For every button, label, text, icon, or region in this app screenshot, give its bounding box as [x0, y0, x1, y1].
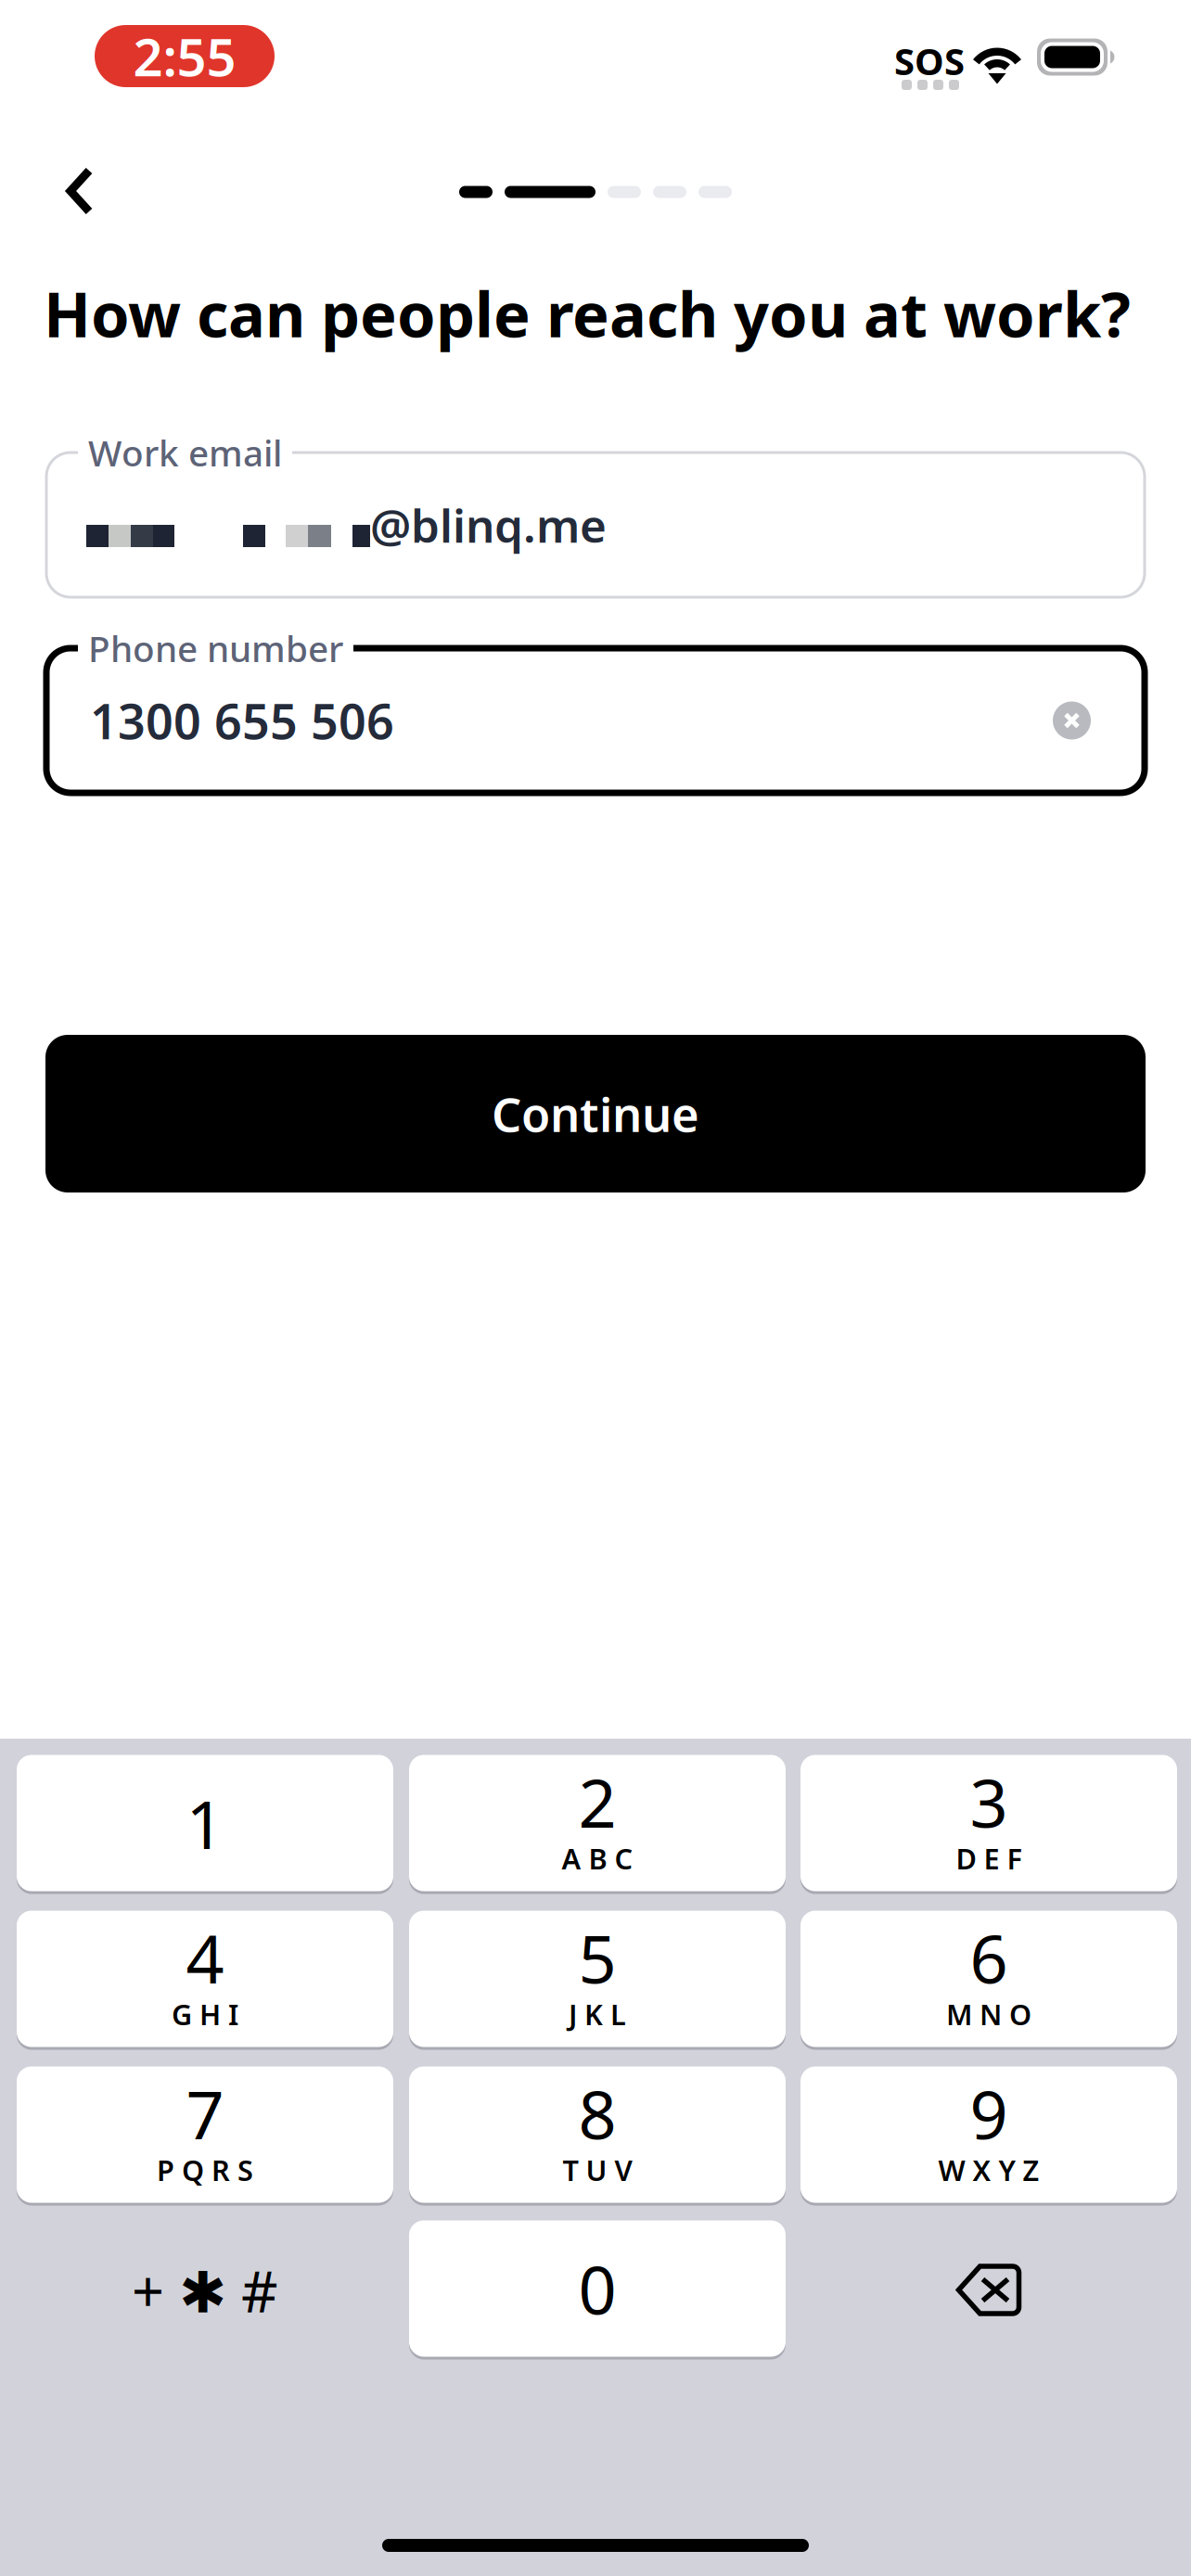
button[interactable]: 3	[800, 1755, 1177, 1894]
staticText: 1	[186, 1779, 224, 1867]
staticText: Phone number	[88, 624, 343, 672]
button[interactable]: Delete	[800, 2222, 1177, 2359]
button[interactable]: 0	[409, 2221, 786, 2360]
button[interactable]: 9	[800, 2067, 1177, 2206]
staticText: 8	[578, 2069, 616, 2158]
button[interactable]: 4	[17, 1911, 393, 2050]
staticText: 0	[578, 2244, 616, 2333]
staticText: 2:55	[133, 22, 236, 91]
button[interactable]: 5	[409, 1911, 786, 2050]
staticText: + ✱ #	[132, 2253, 278, 2328]
staticText: SOS	[894, 36, 965, 85]
button[interactable]: 6	[800, 1911, 1177, 2050]
staticText: A B C	[562, 1839, 633, 1877]
staticText: J K L	[569, 1995, 626, 2033]
staticText: G H I	[172, 1995, 238, 2033]
staticText: P Q R S	[157, 2151, 253, 2189]
button[interactable]: Continue	[45, 1035, 1146, 1192]
button[interactable]: 1	[17, 1755, 393, 1894]
staticText: @blinq.me	[370, 494, 607, 555]
staticText: T U V	[563, 2151, 632, 2189]
staticText: 1300 655 506	[90, 689, 394, 753]
staticText: Work email	[88, 429, 282, 476]
staticText: W X Y Z	[938, 2151, 1039, 2189]
staticText: 7	[186, 2069, 224, 2158]
staticText: M N O	[946, 1995, 1031, 2033]
staticText: 9	[970, 2069, 1008, 2158]
button[interactable]: Plus asterisk hash	[17, 2222, 393, 2359]
staticText: Continue	[492, 1083, 699, 1145]
staticText: 4	[186, 1913, 224, 2002]
staticText: 3	[970, 1757, 1008, 1846]
staticText: 2	[578, 1757, 616, 1846]
staticText: 5	[578, 1913, 616, 2002]
button[interactable]: Back	[24, 140, 135, 242]
button[interactable]: 8	[409, 2067, 786, 2206]
button[interactable]: 2	[409, 1755, 786, 1894]
staticText: How can people reach you at work?	[44, 272, 1131, 354]
staticText: D E F	[956, 1839, 1022, 1877]
button[interactable]: 7	[17, 2067, 393, 2206]
staticText: 6	[970, 1913, 1008, 2002]
